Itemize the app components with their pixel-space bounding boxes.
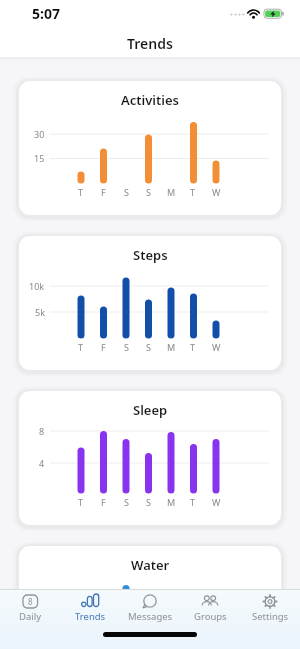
staticText: M bbox=[167, 496, 176, 507]
staticText: T bbox=[78, 341, 84, 352]
button[interactable]: Messages bbox=[120, 593, 180, 631]
staticText: W bbox=[212, 496, 221, 507]
staticText: Daily bbox=[19, 610, 42, 623]
staticText: T bbox=[190, 496, 196, 507]
staticText: 15 bbox=[34, 152, 45, 164]
staticText: Sleep bbox=[133, 401, 168, 419]
staticText: 4 bbox=[39, 457, 45, 469]
staticText: T bbox=[78, 186, 84, 197]
staticText: 5k bbox=[35, 306, 45, 318]
button[interactable]: Trends bbox=[60, 593, 120, 631]
staticText: Groups bbox=[194, 610, 227, 623]
button[interactable]: 8 bbox=[0, 593, 60, 631]
staticText: 8 bbox=[28, 596, 33, 607]
staticText: Settings bbox=[252, 610, 289, 623]
button[interactable]: Groups bbox=[180, 593, 240, 631]
staticText: 5:07 bbox=[32, 4, 60, 23]
staticText: F bbox=[101, 186, 106, 197]
staticText: 30 bbox=[34, 128, 45, 140]
staticText: 8 bbox=[39, 425, 45, 437]
staticText: 10k bbox=[29, 280, 45, 292]
staticText: T bbox=[78, 496, 84, 507]
staticText: S bbox=[146, 186, 151, 197]
staticText: S bbox=[124, 496, 129, 507]
staticText: Steps bbox=[133, 246, 168, 264]
staticText: F bbox=[101, 341, 106, 352]
staticText: Activities bbox=[121, 91, 179, 109]
staticText: T bbox=[190, 186, 196, 197]
staticText: Trends bbox=[127, 34, 173, 53]
staticText: F bbox=[101, 496, 106, 507]
staticText: S bbox=[124, 186, 129, 197]
staticText: S bbox=[146, 496, 151, 507]
staticText: W bbox=[212, 186, 221, 197]
staticText: M bbox=[167, 186, 176, 197]
staticText: M bbox=[167, 341, 176, 352]
staticText: Water bbox=[131, 556, 170, 574]
staticText: T bbox=[190, 341, 196, 352]
staticText: Trends bbox=[75, 610, 106, 623]
button[interactable]: Settings bbox=[240, 593, 300, 631]
staticText: S bbox=[124, 341, 129, 352]
staticText: S bbox=[146, 341, 151, 352]
staticText: W bbox=[212, 341, 221, 352]
staticText: Messages bbox=[128, 610, 173, 623]
